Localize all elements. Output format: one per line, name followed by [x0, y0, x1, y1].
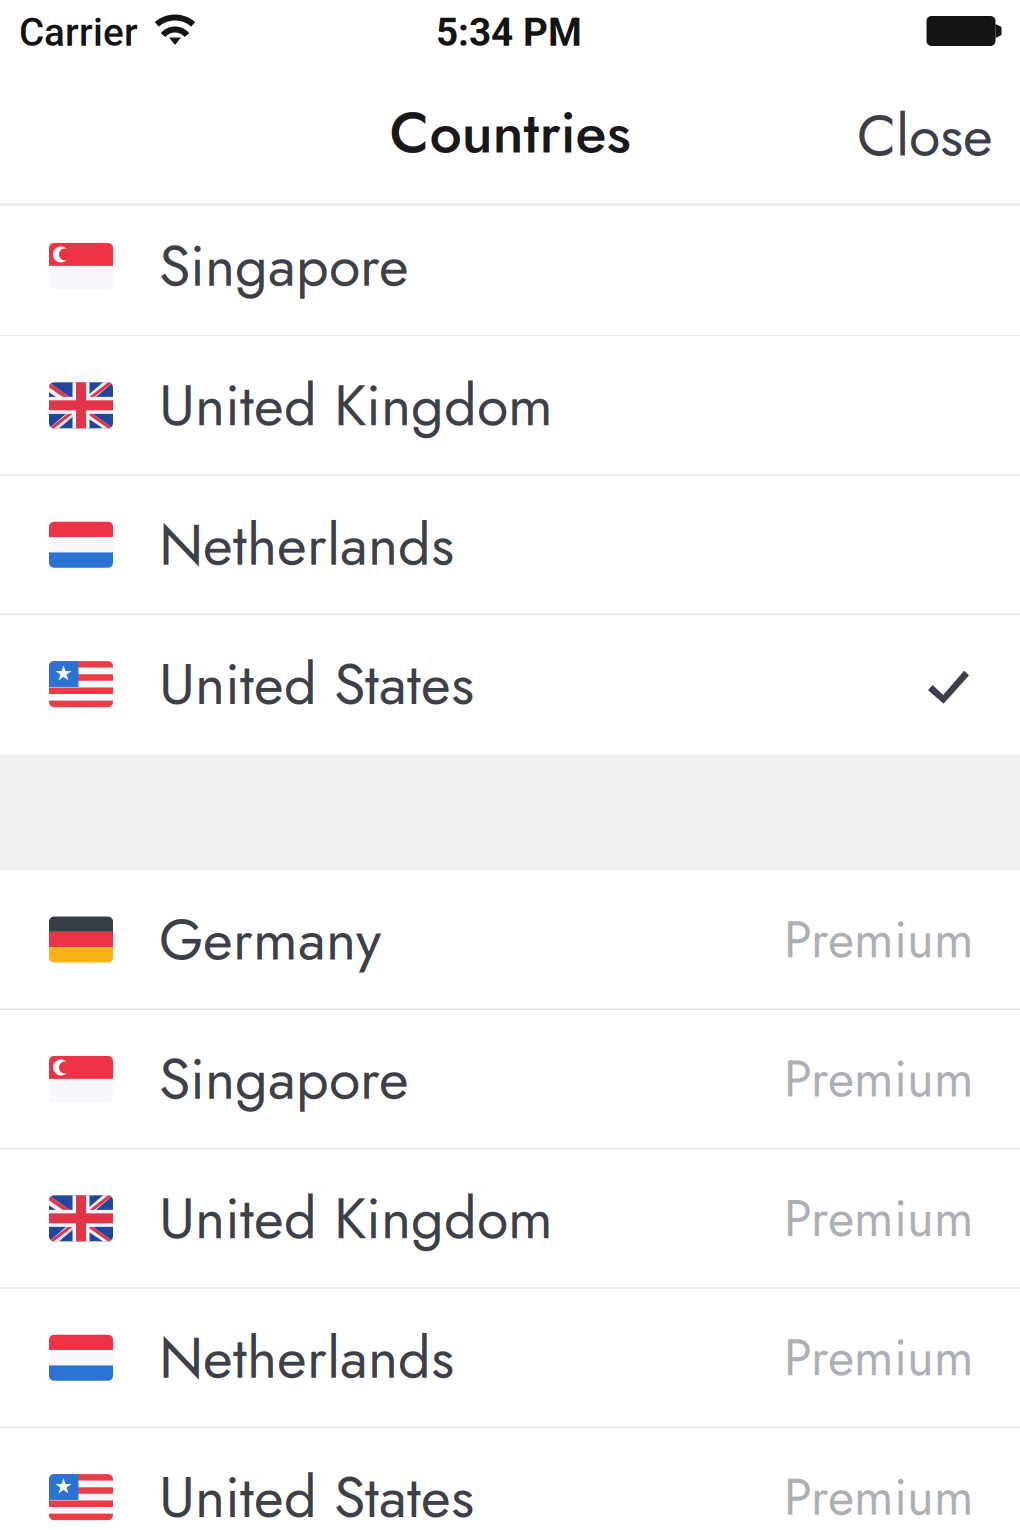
staticText: Singapore [159, 1037, 409, 1120]
staticText: Premium [784, 1460, 974, 1530]
button[interactable]: United States [0, 615, 1020, 755]
button[interactable]: Singapore [0, 197, 1020, 336]
staticText: Netherlands [159, 503, 454, 586]
staticText: Close [857, 94, 993, 177]
button[interactable]: United Kingdom [0, 336, 1020, 476]
staticText: Netherlands [159, 1316, 454, 1399]
button[interactable]: Netherlands [0, 476, 1020, 615]
button[interactable]: Netherlands [0, 1289, 1020, 1428]
staticText: Singapore [159, 224, 409, 307]
staticText: United States [159, 1456, 474, 1530]
button[interactable]: United States [0, 1428, 1020, 1530]
staticText: United States [159, 643, 474, 725]
staticText: Premium [784, 903, 974, 976]
staticText: Premium [784, 1042, 974, 1115]
staticText: 5:34 PM [436, 10, 582, 55]
button[interactable]: Close [831, 72, 1020, 201]
button[interactable]: Germany [0, 871, 1020, 1010]
staticText: Premium [784, 1321, 974, 1394]
staticText: Premium [784, 1182, 974, 1255]
button[interactable]: United Kingdom [0, 1149, 1020, 1289]
staticText: United Kingdom [159, 364, 553, 447]
staticText: Carrier [19, 10, 138, 55]
staticText: Countries [389, 91, 630, 174]
staticText: United Kingdom [159, 1177, 553, 1260]
staticText: Germany [159, 898, 381, 981]
button[interactable]: Singapore [0, 1010, 1020, 1149]
